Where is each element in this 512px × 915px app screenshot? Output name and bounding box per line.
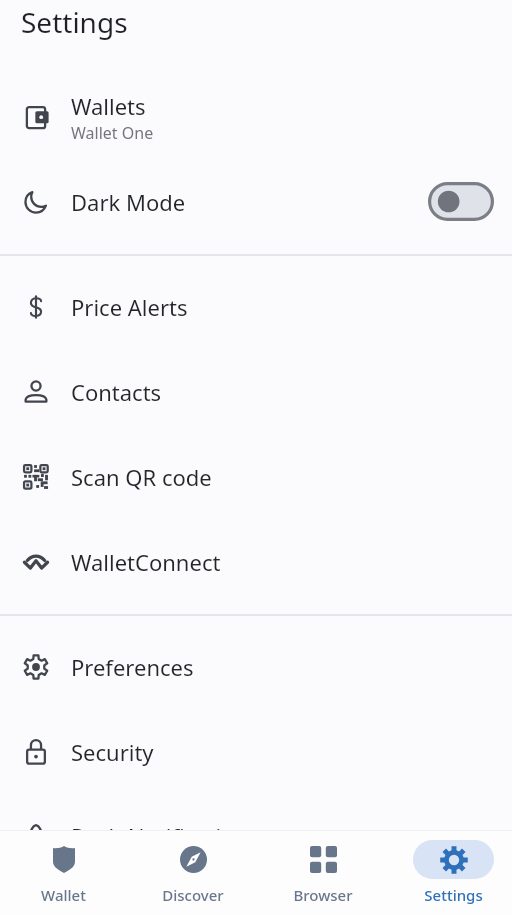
staticText: Preferences: [71, 652, 194, 682]
button[interactable]: WalletConnect: [0, 519, 512, 604]
button[interactable]: Push Notifications: [0, 793, 512, 878]
button[interactable]: Preferences: [0, 624, 512, 709]
staticText: Scan QR code: [71, 462, 212, 492]
staticText: Wallets: [71, 91, 146, 121]
button[interactable]: Scan QR code: [0, 434, 512, 519]
button[interactable]: Wallets: [0, 75, 512, 160]
staticText: Browser: [293, 885, 353, 905]
staticText: Settings: [424, 885, 483, 905]
staticText: Push Notifications: [71, 821, 259, 851]
staticText: Wallet: [41, 885, 86, 905]
staticText: Security: [71, 737, 154, 767]
button[interactable]: Settings: [388, 831, 512, 915]
button[interactable]: Browser: [258, 831, 388, 915]
button[interactable]: Discover: [128, 831, 258, 915]
staticText: Price Alerts: [71, 292, 188, 322]
button[interactable]: Dark Mode: [0, 159, 512, 244]
button[interactable]: Security: [0, 709, 512, 794]
staticText: Discover: [162, 885, 224, 905]
staticText: Dark Mode: [71, 187, 186, 217]
button[interactable]: Contacts: [0, 349, 512, 434]
button[interactable]: Dark Mode toggle: [428, 182, 494, 221]
button[interactable]: Wallet: [0, 831, 128, 915]
staticText: Wallet One: [71, 122, 154, 144]
staticText: Settings: [21, 3, 128, 41]
staticText: WalletConnect: [71, 547, 221, 577]
staticText: Contacts: [71, 377, 162, 407]
button[interactable]: Price Alerts: [0, 264, 512, 349]
